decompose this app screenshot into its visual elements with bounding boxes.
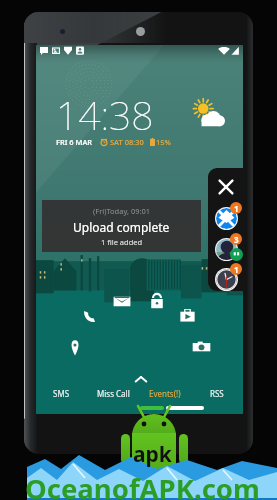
- button[interactable]: Camera: [191, 338, 212, 356]
- button[interactable]: (Fri)Today, 09:01: [42, 200, 201, 252]
- button[interactable]: App 3: [215, 268, 238, 291]
- button[interactable]: Expand: [134, 375, 148, 384]
- button[interactable]: Close: [217, 178, 235, 196]
- staticText: FRI 6 MAR: [56, 137, 93, 147]
- staticText: 14:38: [56, 88, 154, 141]
- button[interactable]: SMS: [36, 384, 87, 402]
- button[interactable]: App 1: [215, 207, 238, 230]
- staticText: (Fri)Today, 09:01: [93, 206, 151, 216]
- button[interactable]: App 2: [215, 238, 238, 261]
- staticText: 1 file added: [101, 237, 143, 247]
- staticText: apk: [133, 440, 172, 469]
- staticText: SMS: [53, 388, 70, 399]
- staticText: Upload complete: [73, 219, 170, 235]
- button[interactable]: Email: [112, 293, 132, 310]
- staticText: RSS: [210, 388, 224, 399]
- button[interactable]: Events(!): [139, 384, 191, 402]
- staticText: 15%: [156, 137, 171, 147]
- staticText: SAT 08:30: [110, 137, 144, 147]
- button[interactable]: Miss Call: [87, 384, 139, 402]
- staticText: 1: [234, 264, 239, 275]
- staticText: 3: [234, 234, 239, 245]
- button[interactable]: Maps: [68, 337, 82, 358]
- button[interactable]: RSS: [191, 384, 243, 402]
- staticText: Miss Call: [97, 388, 130, 399]
- button[interactable]: Lock: [148, 291, 166, 312]
- staticText: OceanofAPK.com: [25, 470, 260, 500]
- staticText: 1: [234, 203, 239, 214]
- button[interactable]: Phone: [81, 307, 99, 326]
- button[interactable]: Play Store: [177, 306, 198, 325]
- staticText: Events(!): [149, 388, 181, 399]
